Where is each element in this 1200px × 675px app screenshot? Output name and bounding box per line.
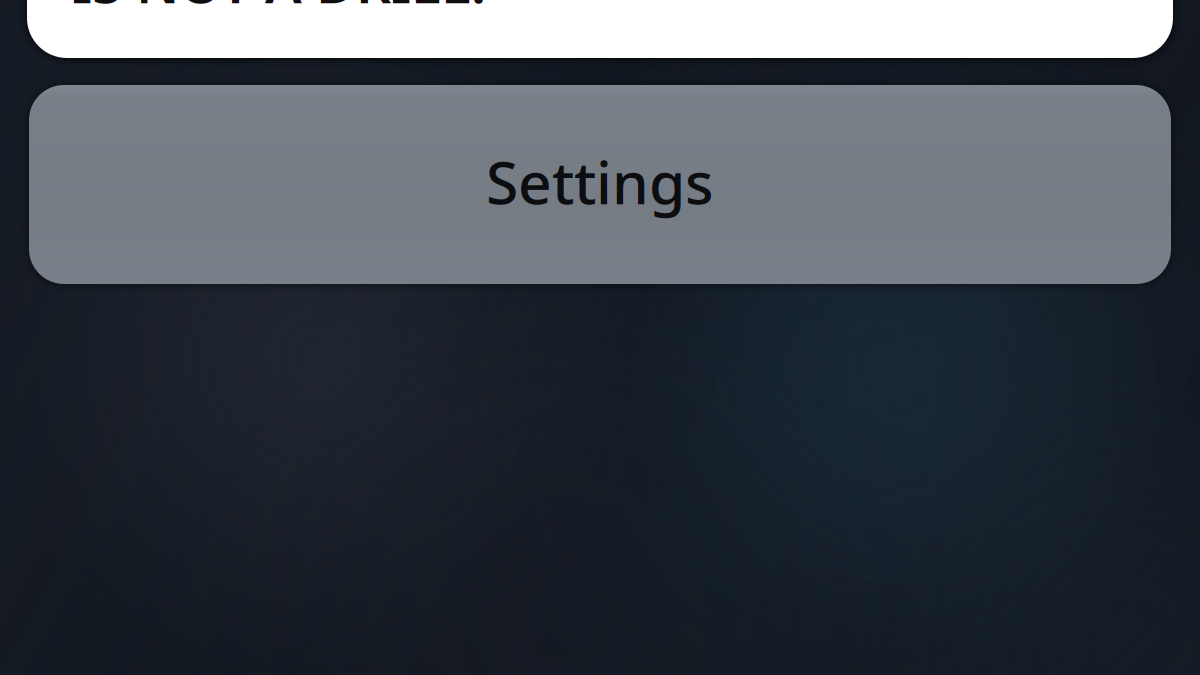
button[interactable]: Settings: [29, 85, 1171, 284]
staticText: Settings: [486, 142, 714, 220]
staticText: IS NOT A DRILL.: [72, 0, 486, 18]
